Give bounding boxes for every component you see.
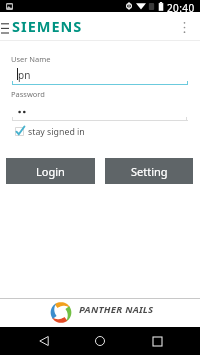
- staticText: User Name: [11, 54, 51, 64]
- button[interactable]: stay signed in: [15, 126, 85, 137]
- staticText: Password: [11, 89, 45, 99]
- staticText: PANTHER NAILS: [79, 303, 154, 316]
- button[interactable]: Recents: [144, 328, 170, 354]
- button[interactable]: Menu: [0, 20, 13, 36]
- button[interactable]: More options: [176, 19, 192, 35]
- staticText: Setting: [131, 164, 168, 179]
- staticText: SIEMENS: [12, 16, 83, 36]
- staticText: pn: [18, 68, 31, 82]
- staticText: stay signed in: [28, 126, 85, 137]
- staticText: Login: [36, 164, 65, 179]
- button[interactable]: Home: [87, 328, 113, 354]
- staticText: 20:40: [167, 1, 195, 13]
- button[interactable]: Setting: [105, 158, 193, 184]
- button[interactable]: Login: [6, 158, 95, 184]
- button[interactable]: Back: [31, 328, 57, 354]
